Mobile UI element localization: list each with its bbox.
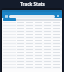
button[interactable]: [2, 63, 62, 66]
button[interactable]: Menu: [4, 14, 8, 18]
button[interactable]: [2, 48, 62, 51]
button[interactable]: [2, 60, 62, 63]
button[interactable]: [2, 39, 62, 42]
button[interactable]: [2, 36, 62, 39]
button[interactable]: Search: [9, 15, 55, 18]
button[interactable]: Profile: [56, 14, 60, 18]
button[interactable]: [2, 21, 62, 24]
button[interactable]: [2, 66, 62, 69]
button[interactable]: [2, 24, 62, 27]
button[interactable]: [2, 33, 62, 36]
button[interactable]: [2, 42, 62, 45]
button[interactable]: Track Stats: [0, 0, 64, 8]
button[interactable]: [2, 51, 62, 54]
button[interactable]: [2, 30, 62, 33]
button[interactable]: [2, 54, 62, 57]
staticText: Track Stats: [20, 1, 45, 7]
button[interactable]: [3, 18, 16, 21]
button[interactable]: [2, 45, 62, 48]
button[interactable]: [2, 27, 62, 30]
button[interactable]: [2, 57, 62, 60]
